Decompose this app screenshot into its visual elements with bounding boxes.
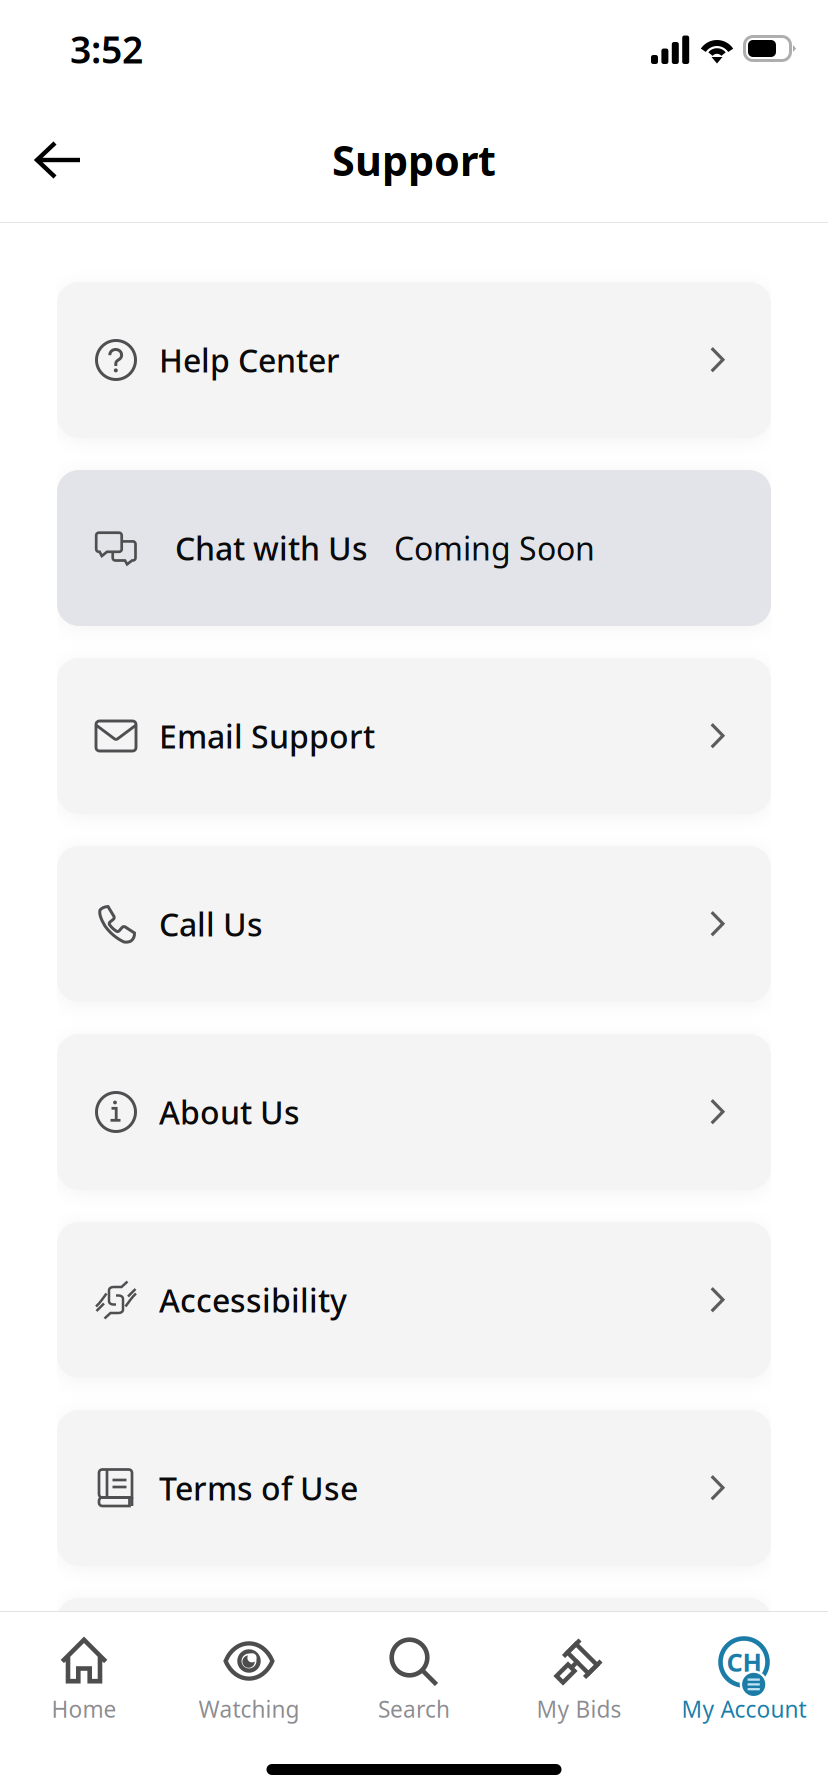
- staticText: Chat with Us: [175, 527, 368, 569]
- staticText: Search: [378, 1694, 450, 1724]
- staticText: CH: [726, 1645, 761, 1679]
- button[interactable]: Email Support: [57, 658, 771, 814]
- staticText: Support: [332, 133, 496, 187]
- staticText: Accessibility: [159, 1279, 347, 1321]
- staticText: 3:52: [70, 24, 143, 74]
- staticText: About Us: [159, 1091, 300, 1133]
- button[interactable]: CH: [661, 1612, 826, 1729]
- button[interactable]: About Us: [57, 1034, 771, 1190]
- staticText: Help Center: [159, 339, 340, 381]
- staticText: Call Us: [159, 903, 263, 945]
- button[interactable]: Home: [1, 1612, 166, 1729]
- button[interactable]: Watching: [166, 1612, 331, 1729]
- staticText: My Bids: [536, 1694, 621, 1724]
- button[interactable]: Terms of Use: [57, 1410, 771, 1566]
- staticText: Coming Soon: [394, 527, 595, 569]
- staticText: Email Support: [159, 715, 375, 757]
- button[interactable]: My Bids: [496, 1612, 661, 1729]
- button[interactable]: Search: [331, 1612, 496, 1729]
- button[interactable]: Accessibility: [57, 1222, 771, 1378]
- button[interactable]: Privacy Policy: [57, 1598, 771, 1754]
- staticText: Terms of Use: [159, 1467, 358, 1509]
- staticText: Privacy Policy: [159, 1655, 369, 1697]
- staticText: Home: [51, 1694, 116, 1724]
- staticText: My Account: [681, 1694, 806, 1724]
- button[interactable]: Chat with Us: [57, 470, 771, 626]
- button[interactable]: Call Us: [57, 846, 771, 1002]
- button[interactable]: Help Center: [57, 282, 771, 438]
- staticText: Watching: [198, 1694, 299, 1724]
- button[interactable]: Back: [0, 116, 104, 204]
